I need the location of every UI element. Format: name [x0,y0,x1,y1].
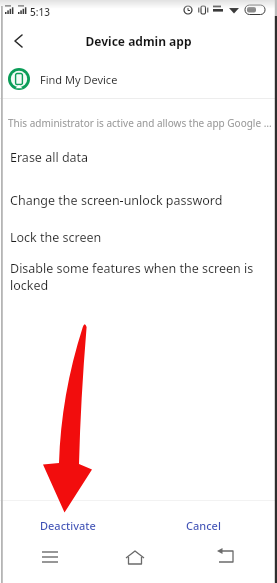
staticText: Device admin app [0,33,277,49]
staticText: Cancel [186,518,221,533]
staticText: 5:13 [30,5,50,19]
staticText: Erase all data [10,149,89,166]
button[interactable] [6,28,32,54]
button[interactable]: Find My Device [0,59,277,98]
staticText: Deactivate [40,518,96,533]
button[interactable] [20,543,80,573]
button[interactable] [197,543,257,573]
staticText: Change the screen-unlock password [10,192,223,209]
staticText: Find My Device [40,72,118,87]
staticText: Lock the screen [10,229,102,246]
button[interactable] [105,543,165,573]
staticText: Disable some features when the screen is… [10,260,270,293]
staticText: This administrator is active and allows … [8,116,277,130]
button[interactable]: Deactivate [28,512,108,538]
button[interactable]: Cancel [168,512,238,538]
